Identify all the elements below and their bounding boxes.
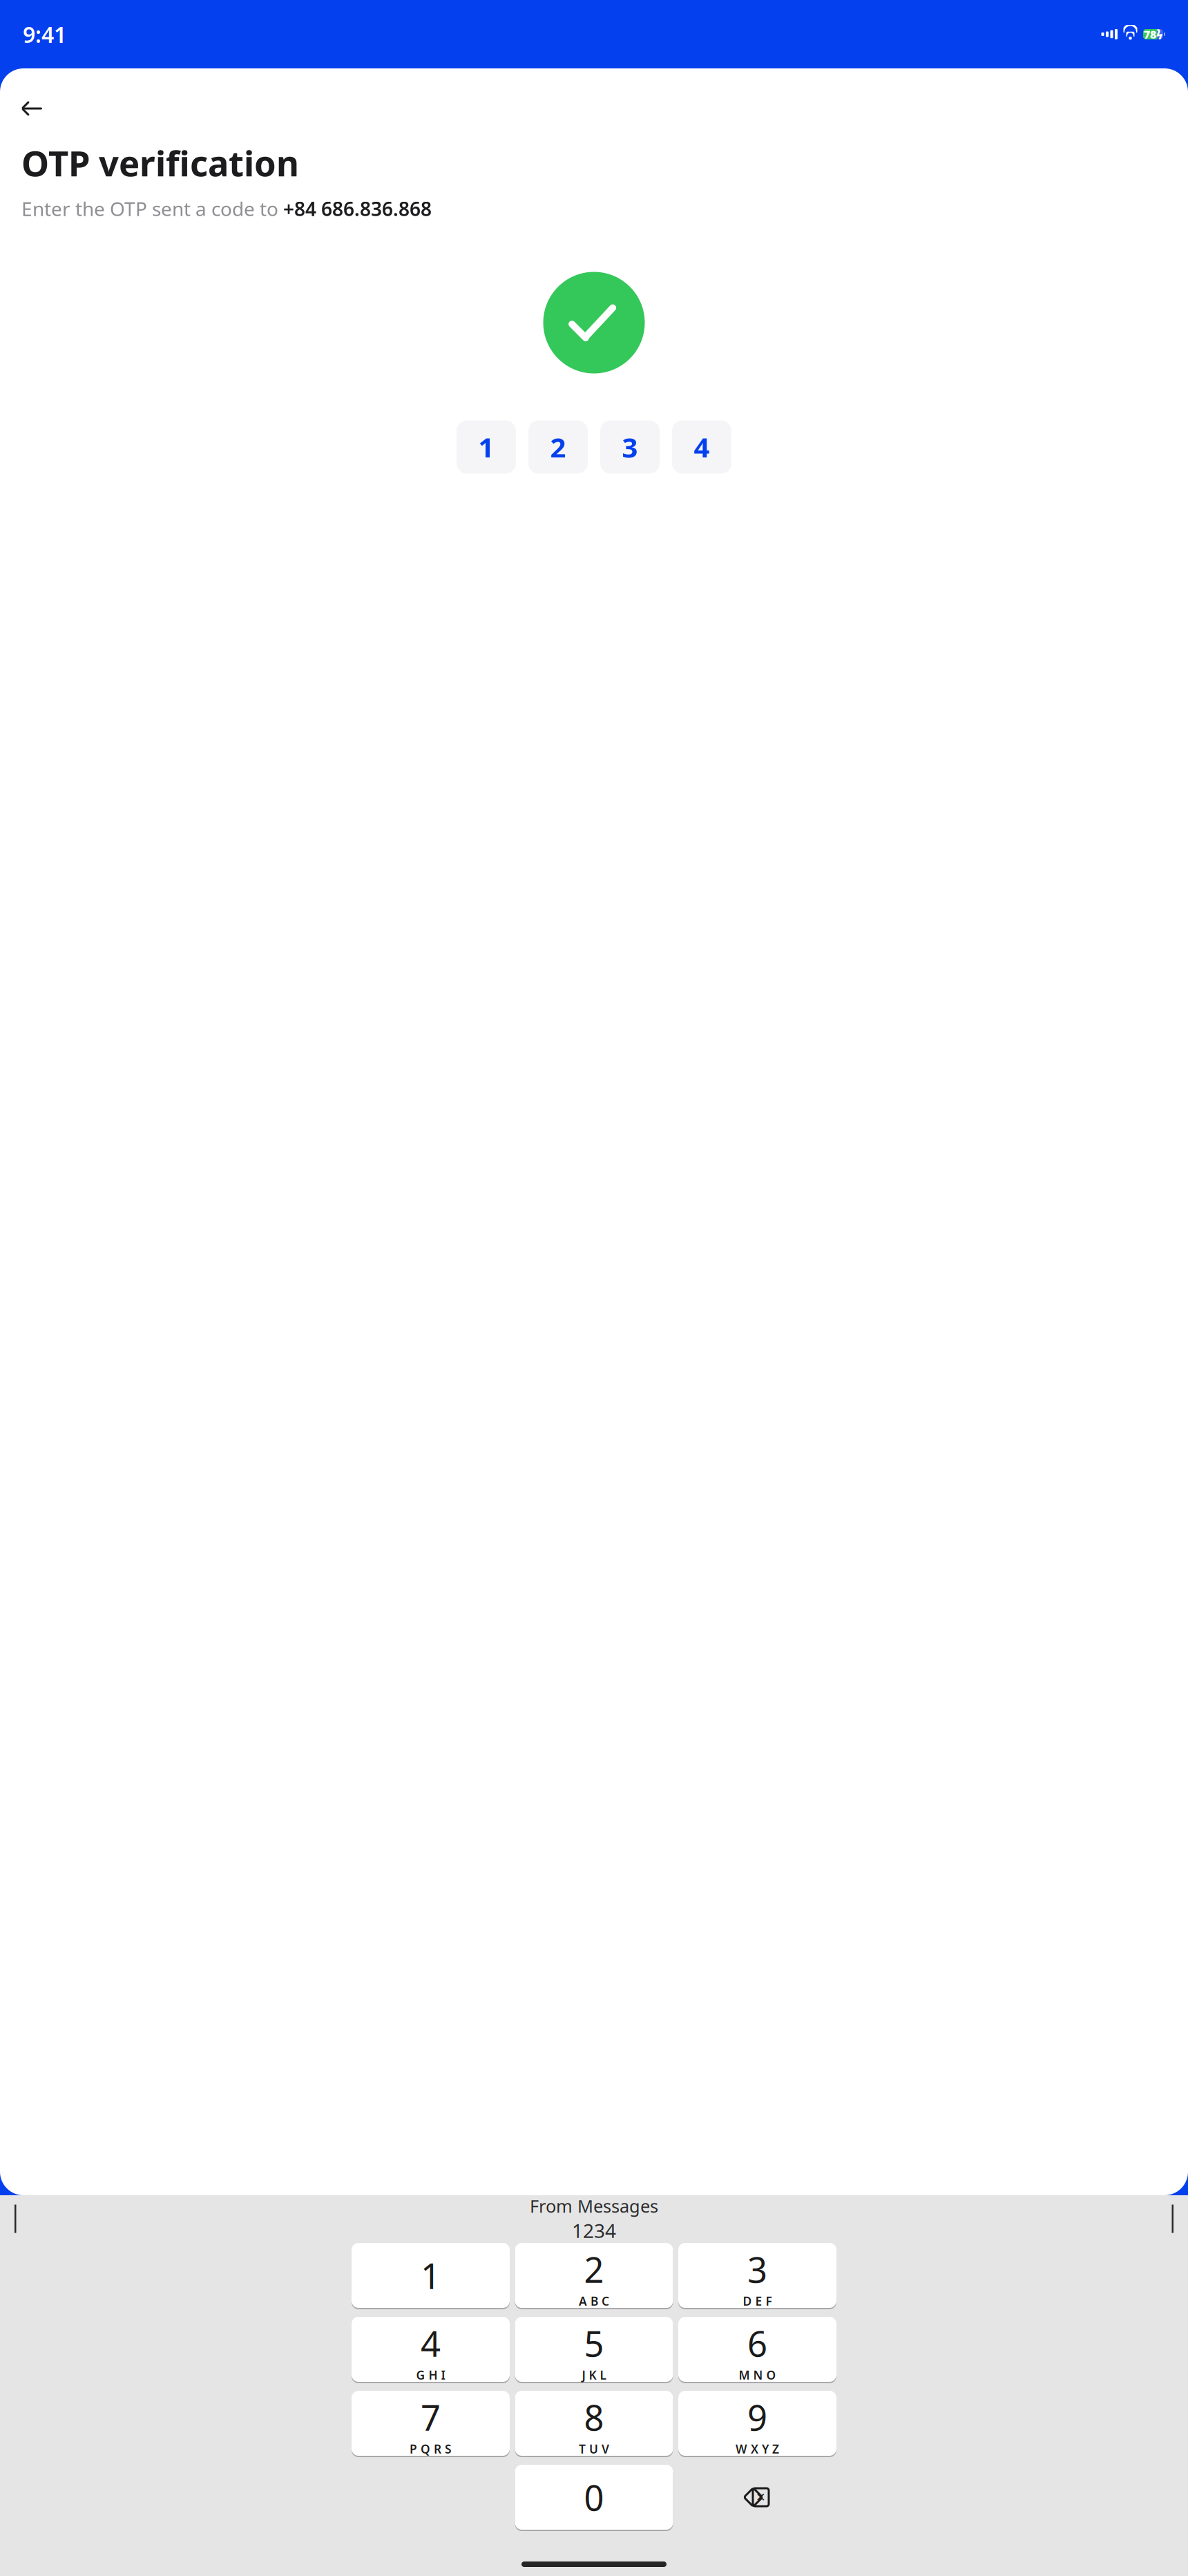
button[interactable]: 2 xyxy=(528,420,588,474)
button[interactable]: 0 xyxy=(515,2464,673,2530)
staticText: Enter the OTP sent a code to xyxy=(21,196,283,221)
staticText: 78 xyxy=(1144,27,1156,42)
staticText: 0 xyxy=(584,2474,604,2521)
staticText: W X Y Z xyxy=(736,2441,779,2457)
button[interactable]: 7 xyxy=(352,2390,510,2456)
button[interactable]: 6 xyxy=(678,2316,836,2383)
button[interactable]: From Messages xyxy=(502,2192,686,2246)
button[interactable]: 3 xyxy=(600,420,660,474)
button[interactable]: Back xyxy=(21,93,53,124)
staticText: 8 xyxy=(584,2394,604,2440)
button[interactable]: Delete xyxy=(678,2464,836,2530)
staticText: G H I xyxy=(416,2367,445,2383)
staticText: ✕ xyxy=(756,2490,766,2504)
staticText: A B C xyxy=(579,2293,609,2309)
button[interactable]: 4 xyxy=(352,2316,510,2383)
staticText: D E F xyxy=(743,2293,772,2309)
staticText: 4 xyxy=(694,429,710,465)
staticText: 1234 xyxy=(572,2218,616,2243)
staticText: 2 xyxy=(550,429,566,465)
button[interactable]: 2 xyxy=(515,2242,673,2309)
staticText: 7 xyxy=(421,2394,441,2440)
button[interactable]: 3 xyxy=(678,2242,836,2309)
staticText: 4 xyxy=(421,2320,441,2366)
button[interactable]: 1 xyxy=(457,420,516,474)
staticText: M N O xyxy=(739,2367,776,2383)
staticText: 3 xyxy=(622,429,638,465)
staticText: T U V xyxy=(579,2441,609,2457)
staticText: 1 xyxy=(478,429,494,465)
staticText: 2 xyxy=(584,2246,604,2292)
staticText: 5 xyxy=(584,2320,604,2366)
button[interactable]: 4 xyxy=(672,420,731,474)
staticText: 6 xyxy=(747,2320,767,2366)
button[interactable]: 1 xyxy=(352,2242,510,2309)
button[interactable]: 5 xyxy=(515,2316,673,2383)
staticText: 3 xyxy=(747,2246,767,2292)
staticText: From Messages xyxy=(530,2194,658,2218)
button[interactable]: 9 xyxy=(678,2390,836,2456)
staticText: 9:41 xyxy=(23,20,66,49)
staticText: OTP verification xyxy=(21,140,299,186)
staticText: P Q R S xyxy=(410,2441,452,2457)
staticText: ϟ xyxy=(1156,26,1162,42)
staticText: +84 686.836.868 xyxy=(283,196,432,221)
staticText: 9 xyxy=(747,2394,767,2440)
staticText: 1 xyxy=(421,2252,441,2299)
staticText: J K L xyxy=(582,2367,606,2383)
button[interactable]: 8 xyxy=(515,2390,673,2456)
